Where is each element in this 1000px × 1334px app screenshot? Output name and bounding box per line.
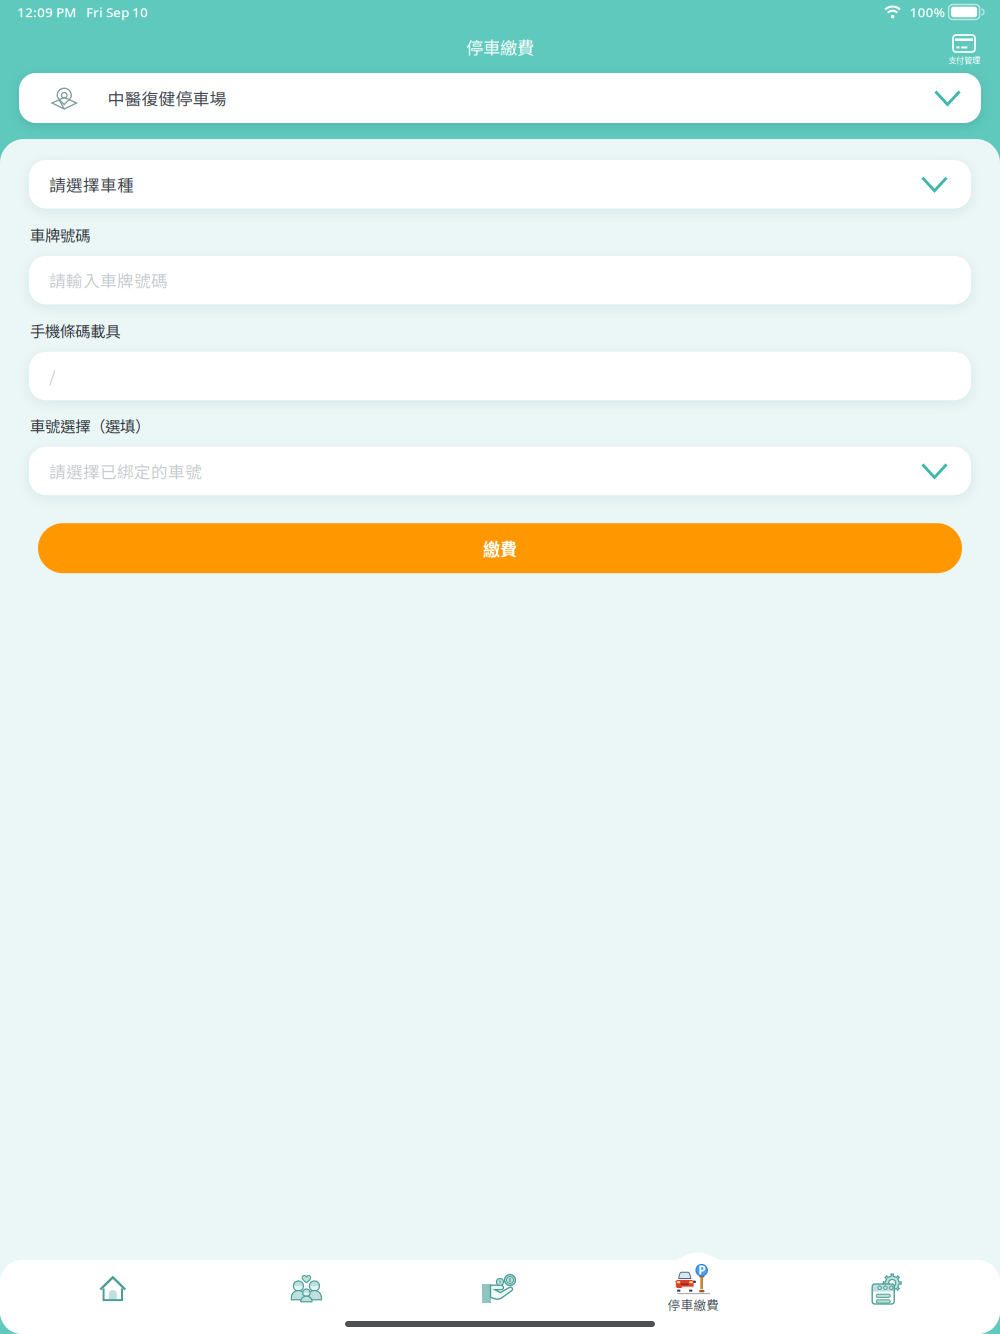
button[interactable]: 繳費 (29, 523, 971, 573)
staticText: 支付管理 (948, 54, 980, 66)
staticText: 繳費 (483, 536, 517, 561)
button[interactable]: 設定 (790, 1263, 984, 1315)
staticText: 停車繳費 (466, 34, 534, 60)
staticText: 請輸入車牌號碼 (49, 268, 168, 292)
staticText: P (698, 1262, 705, 1278)
button[interactable]: 請選擇已綁定的車號 (29, 447, 971, 495)
staticText: 100% (910, 3, 945, 21)
staticText: / (49, 364, 55, 388)
button[interactable]: 支付管理 (948, 28, 1000, 66)
staticText: 手機條碼載具 (30, 319, 120, 342)
staticText: 停車繳費 (668, 1295, 720, 1313)
staticText: 請選擇車種 (49, 172, 134, 196)
staticText: 請選擇已綁定的車號 (49, 459, 202, 483)
button[interactable]: 請輸入車牌號碼 (29, 256, 971, 304)
staticText: 12:09 PM (17, 3, 76, 21)
staticText: 車牌號碼 (30, 223, 90, 246)
button[interactable]: 首頁 (16, 1263, 210, 1315)
staticText: Fri Sep 10 (86, 3, 148, 21)
button[interactable]: 請選擇車種 (29, 160, 971, 208)
button[interactable]: 中醫復健停車場 (0, 73, 1000, 123)
button[interactable]: 家庭 (210, 1263, 403, 1315)
staticText: 中醫復健停車場 (107, 86, 226, 110)
button[interactable]: 繳費 (403, 1263, 597, 1315)
staticText: 車號選擇（選填） (30, 414, 150, 437)
button[interactable]: 停車繳費 (597, 1263, 790, 1315)
